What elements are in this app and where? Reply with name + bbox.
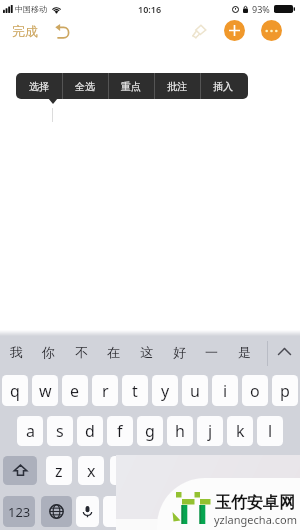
button[interactable]: 完成 xyxy=(8,20,42,42)
button[interactable]: 这 xyxy=(130,336,162,367)
button[interactable]: x xyxy=(78,456,104,485)
button[interactable]: k xyxy=(227,416,253,446)
button[interactable]: h xyxy=(167,416,193,446)
staticText: h xyxy=(175,420,185,442)
staticText: 是 xyxy=(238,344,251,360)
staticText: n xyxy=(214,460,224,482)
button[interactable]: 好 xyxy=(163,336,195,367)
button[interactable]: 一 xyxy=(195,336,227,367)
staticText: 换行 xyxy=(260,504,284,519)
button[interactable]: d xyxy=(77,416,103,446)
staticText: 这 xyxy=(140,344,153,360)
staticText: 不 xyxy=(75,344,88,360)
button[interactable]: f xyxy=(107,416,133,446)
staticText: 123 xyxy=(8,503,31,521)
staticText: g xyxy=(145,420,155,442)
staticText: q xyxy=(10,380,20,402)
button[interactable]: 插入 xyxy=(200,73,246,99)
staticText: o xyxy=(250,380,260,402)
button[interactable]: l xyxy=(257,416,283,446)
button[interactable]: Backspace xyxy=(263,456,297,485)
staticText: a xyxy=(26,420,35,442)
button[interactable]: e xyxy=(62,375,88,406)
button[interactable]: 选择 xyxy=(16,73,62,99)
button[interactable]: 换行 xyxy=(246,496,297,527)
staticText: 我 xyxy=(10,344,23,360)
button[interactable]: 我 xyxy=(0,336,32,367)
staticText: f xyxy=(117,420,123,442)
button[interactable]: y xyxy=(152,375,178,406)
button[interactable]: Undo xyxy=(48,19,76,43)
button[interactable]: 不 xyxy=(65,336,97,367)
staticText: s xyxy=(56,420,64,442)
button[interactable]: z xyxy=(46,456,72,485)
staticText: 重点 xyxy=(121,80,141,93)
button[interactable]: b xyxy=(174,456,200,485)
staticText: d xyxy=(85,420,95,442)
staticText: 10:16 xyxy=(138,3,162,15)
staticText: p xyxy=(280,380,290,402)
staticText: 插入 xyxy=(213,80,233,93)
staticText: 完成 xyxy=(12,23,38,39)
staticText: y xyxy=(161,380,170,402)
button[interactable]: s xyxy=(47,416,73,446)
button[interactable]: n xyxy=(206,456,232,485)
staticText: x xyxy=(87,460,96,482)
staticText: 批注 xyxy=(167,80,187,93)
staticText: t xyxy=(132,380,138,402)
button[interactable]: Shift xyxy=(3,456,37,485)
button[interactable]: g xyxy=(137,416,163,446)
button[interactable]: t xyxy=(122,375,148,406)
button[interactable]: 全选 xyxy=(62,73,108,99)
staticText: 在 xyxy=(107,344,120,360)
staticText: e xyxy=(70,380,80,402)
staticText: l xyxy=(268,420,273,442)
button[interactable]: u xyxy=(182,375,208,406)
button[interactable]: a xyxy=(17,416,43,446)
button[interactable]: Space xyxy=(103,496,242,527)
button[interactable]: c xyxy=(110,456,136,485)
button[interactable]: q xyxy=(2,375,28,406)
button[interactable]: r xyxy=(92,375,118,406)
button[interactable]: 批注 xyxy=(154,73,200,99)
staticText: w xyxy=(39,380,52,402)
button[interactable]: 是 xyxy=(228,336,260,367)
staticText: 好 xyxy=(173,344,186,360)
button[interactable]: p xyxy=(272,375,298,406)
staticText: j xyxy=(208,420,213,442)
staticText: i xyxy=(223,380,228,402)
button[interactable]: m xyxy=(238,456,264,485)
button[interactable]: Voice input xyxy=(76,496,99,527)
button[interactable]: Expand suggestions xyxy=(268,336,300,367)
staticText: 玉竹安卓网 xyxy=(215,493,295,513)
button[interactable]: 重点 xyxy=(108,73,154,99)
staticText: z xyxy=(55,460,63,482)
staticText: 93% xyxy=(252,3,270,15)
staticText: 一 xyxy=(205,344,218,360)
staticText: 中国移动 xyxy=(15,4,47,14)
button[interactable]: Switch keyboard xyxy=(41,496,72,527)
staticText: b xyxy=(182,460,192,482)
button[interactable]: Brush xyxy=(188,20,210,42)
staticText: 选择 xyxy=(29,80,49,93)
button[interactable]: o xyxy=(242,375,268,406)
button[interactable]: j xyxy=(197,416,223,446)
button[interactable]: Add xyxy=(224,20,245,41)
staticText: 你 xyxy=(42,344,55,360)
staticText: u xyxy=(190,380,200,402)
button[interactable]: w xyxy=(32,375,58,406)
button[interactable]: i xyxy=(212,375,238,406)
staticText: r xyxy=(102,380,109,402)
staticText: m xyxy=(244,460,259,482)
staticText: 全选 xyxy=(75,80,95,93)
button[interactable]: 在 xyxy=(97,336,129,367)
button[interactable]: 123 xyxy=(3,496,35,527)
button[interactable]: 你 xyxy=(32,336,64,367)
staticText: k xyxy=(236,420,245,442)
staticText: yzlangecha.com xyxy=(214,512,297,527)
button[interactable]: More options xyxy=(261,20,282,41)
